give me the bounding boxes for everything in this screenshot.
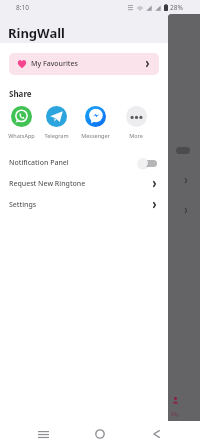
button[interactable]: Settings	[0, 194, 168, 215]
button[interactable]: My Favourites	[9, 53, 159, 75]
button[interactable]: Notification Panel	[0, 152, 168, 173]
button[interactable]: Share via WhatsApp	[4, 106, 38, 139]
staticText: Telegram	[44, 132, 69, 139]
button[interactable]: Notification panel switch	[137, 157, 157, 169]
button[interactable]: Back	[153, 430, 160, 438]
button[interactable]: Home	[95, 429, 105, 439]
staticText: RingWall	[8, 24, 65, 42]
button[interactable]: Request New Ringtone	[0, 173, 168, 194]
staticText: My Favourites	[31, 59, 78, 69]
button[interactable]: Share via Messenger	[78, 106, 112, 139]
staticText: More	[129, 132, 143, 139]
button[interactable]: Share via Telegram	[39, 106, 73, 139]
staticText: Notification Panel	[9, 158, 69, 168]
staticText: 8:10	[16, 3, 29, 12]
button[interactable]: Share via More	[119, 106, 153, 139]
staticText: Request New Ringtone	[9, 179, 86, 189]
staticText: Share	[9, 88, 32, 99]
staticText: My	[171, 410, 179, 417]
staticText: Settings	[9, 200, 37, 210]
button[interactable]: Recent apps	[38, 431, 49, 438]
staticText: Messenger	[81, 132, 110, 139]
staticText: WhatsApp	[8, 132, 35, 139]
staticText: 28%	[170, 3, 183, 12]
